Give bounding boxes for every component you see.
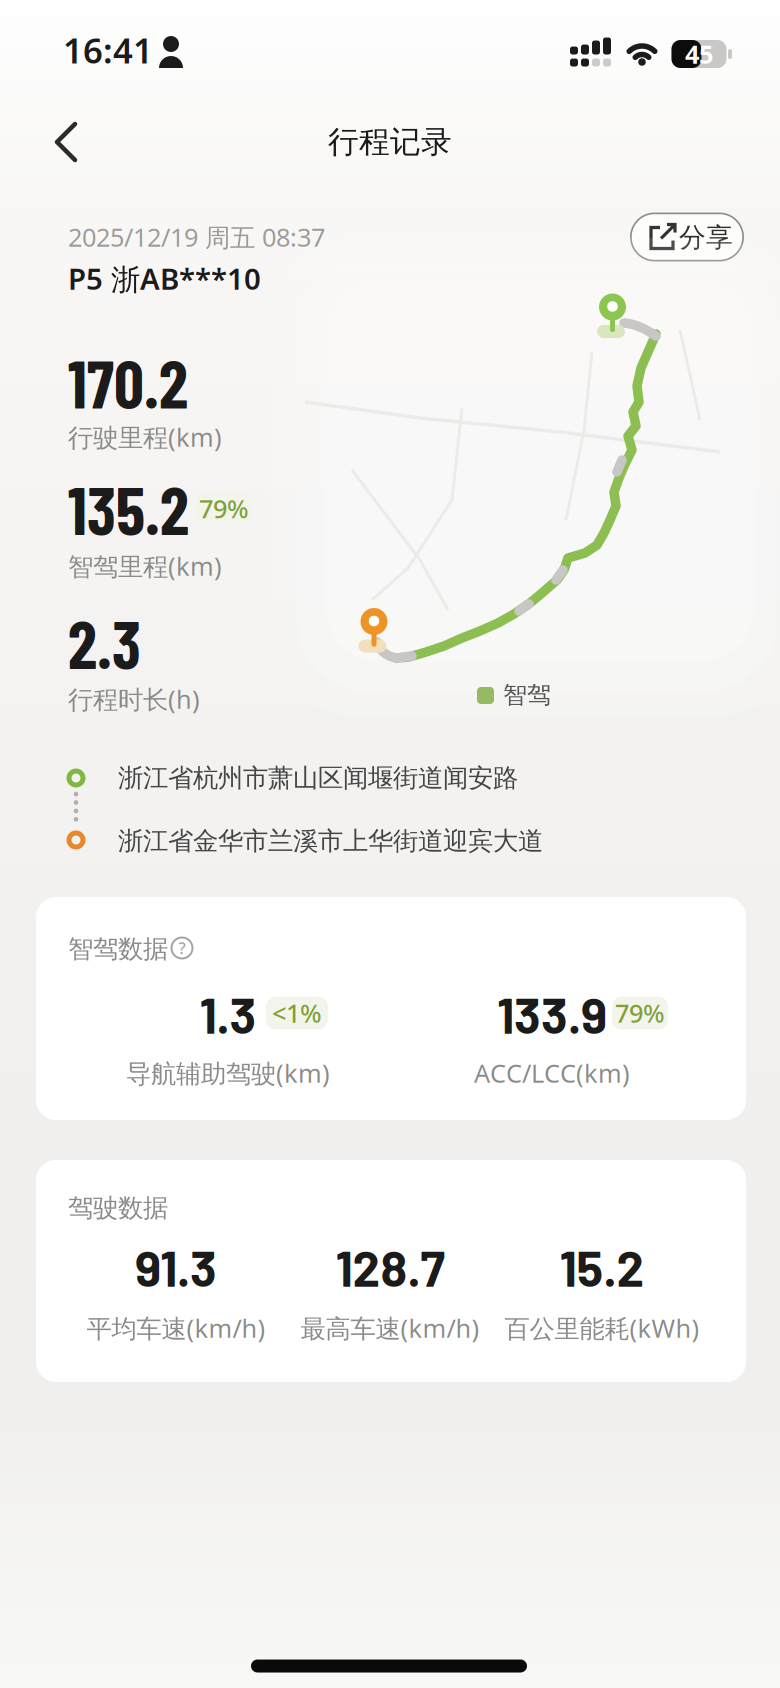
staticText: 导航辅助驾驶(km) [126,1056,330,1090]
staticText: 智驾数据 [68,933,168,964]
staticText: 智驾里程(km) [68,549,222,583]
staticText: 16:41 [63,27,153,73]
staticText: 行程记录 [328,123,452,161]
staticText: 最高车速(km/h) [300,1311,479,1345]
button[interactable]: 智驾数据说明 [165,931,199,965]
staticText: 79% [199,492,249,525]
staticText: 智驾 [503,680,551,710]
staticText: <1% [272,996,322,1030]
staticText: 平均车速(km/h) [86,1311,265,1345]
staticText: ? [178,937,185,959]
staticText: 170.2 [68,342,188,422]
staticText: 79% [615,996,665,1030]
staticText: 45 [685,37,713,71]
button[interactable]: Back [44,120,88,164]
staticText: 15.2 [559,1237,644,1297]
staticText: 分享 [679,221,733,254]
button[interactable]: 分享 [630,212,744,261]
staticText: ACC/LCC(km) [474,1056,630,1090]
staticText: 2.3 [68,603,141,682]
staticText: 135.2 [68,469,189,548]
staticText: 行程时长(h) [68,682,200,716]
staticText: 浙江省杭州市萧山区闻堰街道闻安路 [118,762,518,793]
staticText: 驾驶数据 [68,1192,168,1223]
staticText: 128.7 [335,1237,444,1297]
staticText: 浙江省金华市兰溪市上华街道迎宾大道 [118,825,543,856]
staticText: P5 浙AB***10 [68,259,261,298]
staticText: 133.9 [497,984,607,1044]
staticText: 91.3 [135,1237,217,1297]
staticText: 行驶里程(km) [68,420,222,454]
staticText: 1.3 [199,984,256,1044]
staticText: 百公里能耗(kWh) [504,1311,699,1345]
staticText: 2025/12/19 周五 08:37 [68,220,325,254]
